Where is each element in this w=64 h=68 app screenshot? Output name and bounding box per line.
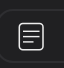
button[interactable]: Notes bbox=[10, 0, 54, 68]
